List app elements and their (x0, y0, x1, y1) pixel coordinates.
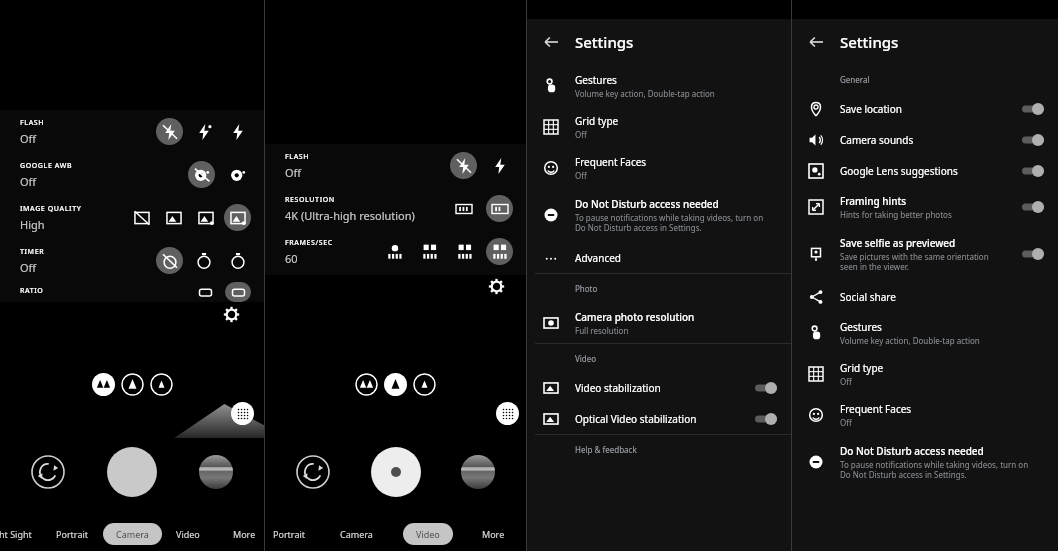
staticText: Volume key action, Double-tap action (575, 88, 715, 99)
button[interactable]: Save selfie as previewed (792, 227, 1058, 281)
button[interactable]: TIMER (0, 239, 264, 282)
button[interactable]: FHD resolution (450, 195, 477, 222)
button[interactable]: Video stabilization (527, 372, 791, 403)
button[interactable]: Quality high (224, 204, 251, 231)
button[interactable]: Timer off (156, 247, 183, 274)
button[interactable]: Camera settings (220, 303, 242, 325)
button[interactable]: Video (416, 528, 440, 540)
button[interactable]: More options (231, 402, 254, 425)
button[interactable]: Timer 10s (224, 247, 251, 274)
button[interactable]: Telephoto (413, 373, 436, 396)
button[interactable]: Save location switch (1022, 103, 1044, 115)
button[interactable]: Gestures (527, 65, 791, 106)
button[interactable]: Social share (792, 281, 1058, 312)
staticText: Frequent Faces (575, 155, 647, 169)
staticText: Off (840, 376, 852, 387)
button[interactable]: Telephoto (150, 373, 173, 396)
button[interactable]: FLASH (265, 144, 526, 187)
button[interactable]: Quality standard (160, 204, 187, 231)
button[interactable]: Grid type (527, 106, 791, 147)
button[interactable]: Ultra wide (92, 373, 115, 396)
button[interactable]: Video stabilization switch (755, 382, 777, 394)
button[interactable]: 4K resolution (486, 195, 513, 222)
button[interactable]: Camera sounds switch (1022, 134, 1044, 146)
button[interactable]: Flash on (486, 152, 513, 179)
button[interactable]: Auto frames (381, 238, 408, 265)
button[interactable]: Switch camera (296, 455, 330, 489)
staticText: Off (840, 417, 852, 428)
staticText: Camera (116, 528, 149, 540)
button[interactable]: Back (538, 29, 564, 55)
button[interactable]: Frequent Faces (527, 147, 791, 188)
button[interactable]: Camera (116, 528, 149, 540)
button[interactable]: Ratio 4 to 3 (192, 282, 218, 302)
staticText: Video (416, 528, 440, 540)
button[interactable]: Flash off (156, 118, 183, 145)
button[interactable]: 60 frames (486, 238, 513, 265)
button[interactable]: Ultra wide (355, 373, 378, 396)
button[interactable]: Gestures (792, 312, 1058, 353)
button[interactable]: AWB off (188, 161, 215, 188)
button[interactable]: Save location (792, 93, 1058, 124)
button[interactable]: More options (496, 402, 519, 425)
staticText: FLASH (285, 152, 310, 162)
button[interactable]: Flash auto (190, 118, 217, 145)
button[interactable]: Portrait (56, 528, 89, 540)
button[interactable]: Advanced (527, 242, 791, 273)
button[interactable]: Back (803, 29, 829, 55)
button[interactable]: 30 frames (451, 238, 478, 265)
button[interactable]: Last photo (199, 455, 233, 489)
button[interactable]: Take photo (107, 447, 157, 497)
staticText: Portrait (273, 528, 306, 540)
button[interactable]: FLASH (0, 110, 264, 153)
staticText: Off (575, 170, 587, 181)
button[interactable]: Grid type (792, 353, 1058, 394)
button[interactable]: Quality none (128, 204, 155, 231)
staticText: Off (20, 260, 37, 275)
button[interactable]: Last photo (461, 455, 495, 489)
button[interactable]: Flash off (450, 152, 477, 179)
button[interactable]: FRAMES/SEC (265, 230, 526, 273)
staticText: Off (20, 131, 37, 146)
button[interactable]: Do Not Disturb access needed (792, 435, 1058, 489)
staticText: RATIO (20, 286, 44, 296)
button[interactable]: GOOGLE AWB (0, 153, 264, 196)
button[interactable]: 24 frames (416, 238, 443, 265)
button[interactable]: Video (176, 528, 200, 540)
button[interactable]: More (233, 528, 256, 540)
button[interactable]: Record video (371, 447, 421, 497)
button[interactable]: Google Lens suggestions (792, 155, 1058, 186)
button[interactable]: ht Sight (0, 528, 32, 540)
button[interactable]: IMAGE QUALITY (0, 196, 264, 239)
button[interactable]: Do Not Disturb access needed (527, 188, 791, 242)
staticText: Off (575, 129, 587, 140)
staticText: Video (575, 353, 597, 364)
button[interactable]: Framing hints switch (1022, 201, 1044, 213)
button[interactable]: Optical Video stabilization switch (755, 413, 777, 425)
staticText: Camera (340, 528, 373, 540)
button[interactable]: Camera sounds (792, 124, 1058, 155)
staticText: Frequent Faces (840, 402, 912, 416)
button[interactable]: Framing hints (792, 186, 1058, 227)
button[interactable]: Flash on (224, 118, 251, 145)
button[interactable]: Camera (340, 528, 373, 540)
button[interactable]: RESOLUTION (265, 187, 526, 230)
button[interactable]: Quality plus (192, 204, 219, 231)
button[interactable]: Wide (384, 373, 407, 396)
button[interactable]: More (482, 528, 505, 540)
button[interactable]: Camera settings (485, 275, 507, 297)
button[interactable]: Camera photo resolution (527, 302, 791, 343)
staticText: Camera sounds (840, 133, 914, 147)
button[interactable]: Timer 3s (190, 247, 217, 274)
button[interactable]: Ratio 16 to 9 (225, 282, 251, 302)
button[interactable]: Frequent Faces (792, 394, 1058, 435)
button[interactable]: Switch camera (31, 455, 65, 489)
button[interactable]: Save selfie as previewed switch (1022, 248, 1044, 260)
staticText: Portrait (56, 528, 89, 540)
button[interactable]: Google Lens suggestions switch (1022, 165, 1044, 177)
button[interactable]: AWB on (224, 161, 251, 188)
staticText: Photo (575, 283, 598, 294)
button[interactable]: Wide (121, 373, 144, 396)
button[interactable]: Portrait (273, 528, 306, 540)
button[interactable]: Optical Video stabilization (527, 403, 791, 434)
